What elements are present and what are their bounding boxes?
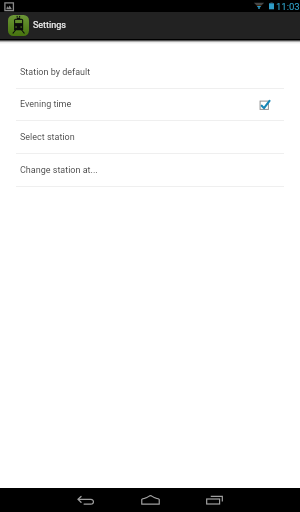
button[interactable]: Settings xyxy=(0,12,300,39)
button[interactable]: Evening time xyxy=(0,89,300,120)
staticText: Evening time xyxy=(20,99,72,110)
staticText: Change station at... xyxy=(20,165,98,176)
button[interactable]: Home xyxy=(118,488,182,512)
button[interactable]: Station by default xyxy=(0,56,300,88)
staticText: Select station xyxy=(20,132,75,143)
staticText: Station by default xyxy=(20,67,91,78)
button[interactable]: Back xyxy=(54,488,118,512)
staticText: Settings xyxy=(33,20,66,31)
button[interactable]: Recent apps xyxy=(182,488,246,512)
staticText: 11:03 xyxy=(276,1,300,12)
button[interactable]: Select station xyxy=(0,121,300,153)
button[interactable]: Change station at... xyxy=(0,154,300,186)
